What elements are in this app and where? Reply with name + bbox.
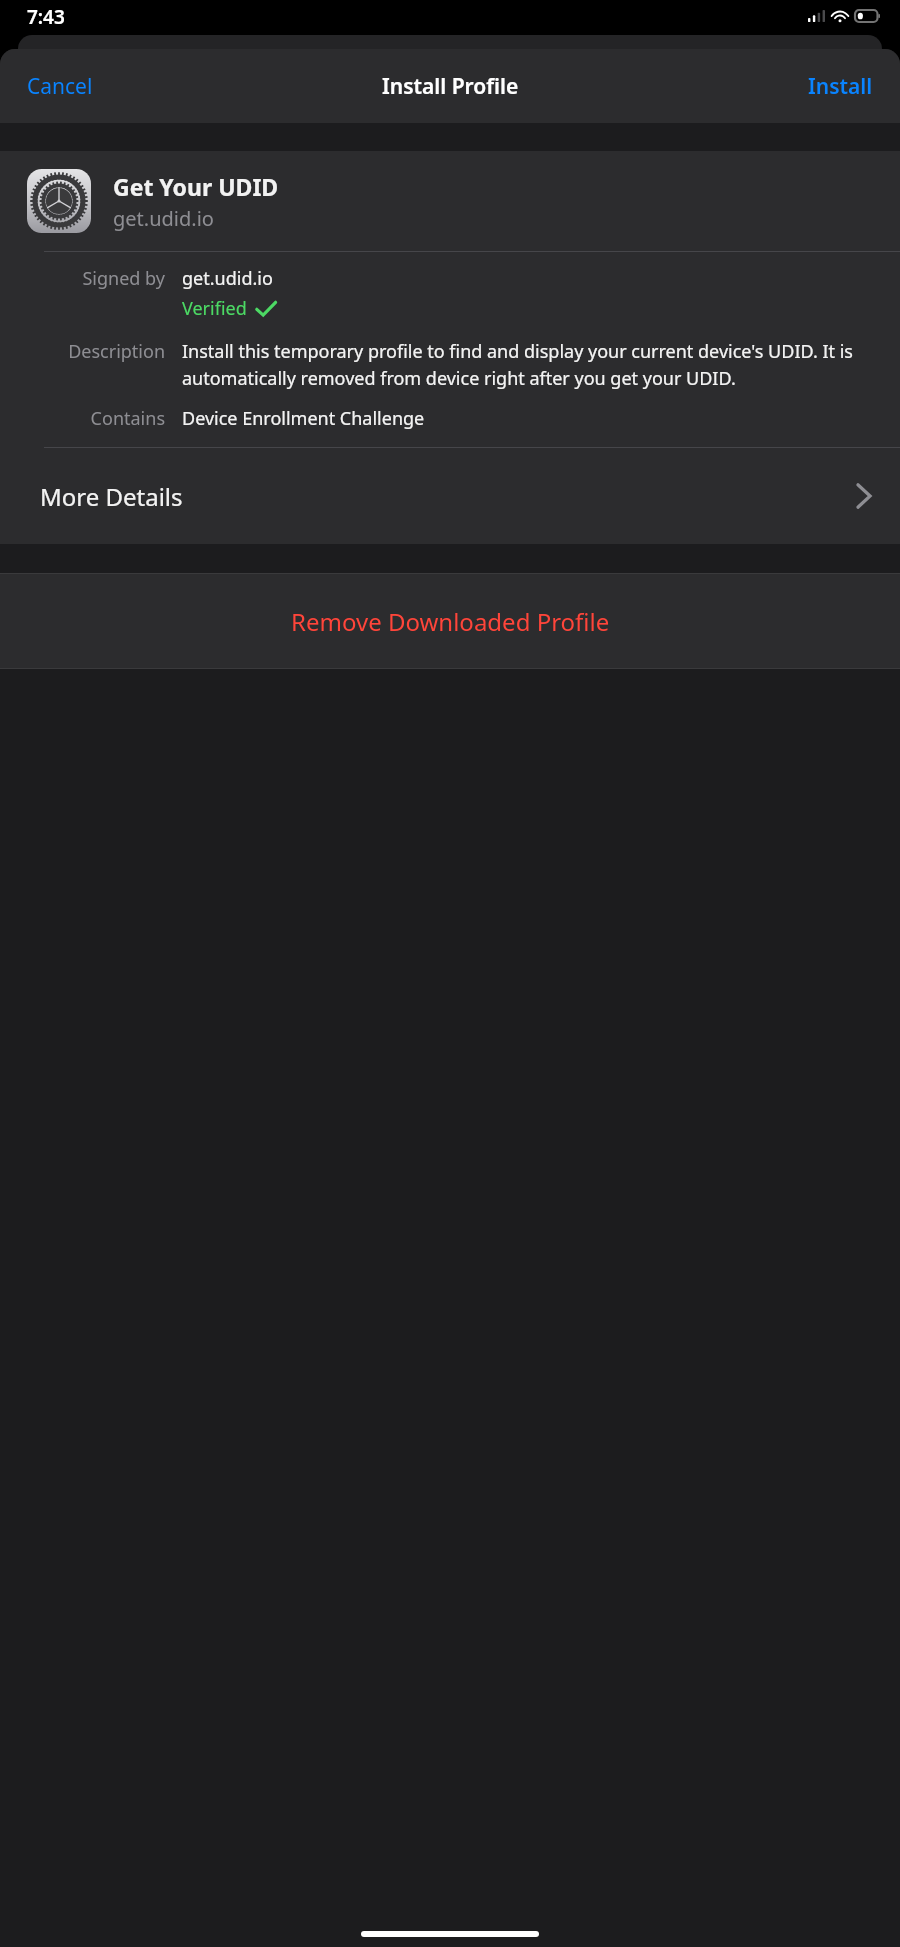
staticText: Device Enrollment Challenge xyxy=(182,406,425,431)
button[interactable]: More Details xyxy=(0,448,900,544)
staticText: Get Your UDID xyxy=(113,171,279,202)
staticText: Cancel xyxy=(27,72,93,101)
staticText: get.udid.io xyxy=(182,266,273,291)
staticText: Signed by xyxy=(20,266,165,291)
staticText: Remove Downloaded Profile xyxy=(291,605,610,638)
staticText: get.udid.io xyxy=(113,205,214,232)
staticText: Install Profile xyxy=(382,72,519,101)
button[interactable]: Install xyxy=(781,58,900,115)
staticText: 7:43 xyxy=(27,4,65,30)
button[interactable]: Remove Downloaded Profile xyxy=(0,574,900,668)
staticText: Install xyxy=(808,72,873,101)
staticText: Install this temporary profile to find a… xyxy=(182,339,876,390)
staticText: Verified xyxy=(182,296,247,321)
staticText: Description xyxy=(20,339,165,364)
staticText: Contains xyxy=(20,406,165,431)
button[interactable]: Cancel xyxy=(0,58,120,115)
staticText: More Details xyxy=(40,480,856,513)
